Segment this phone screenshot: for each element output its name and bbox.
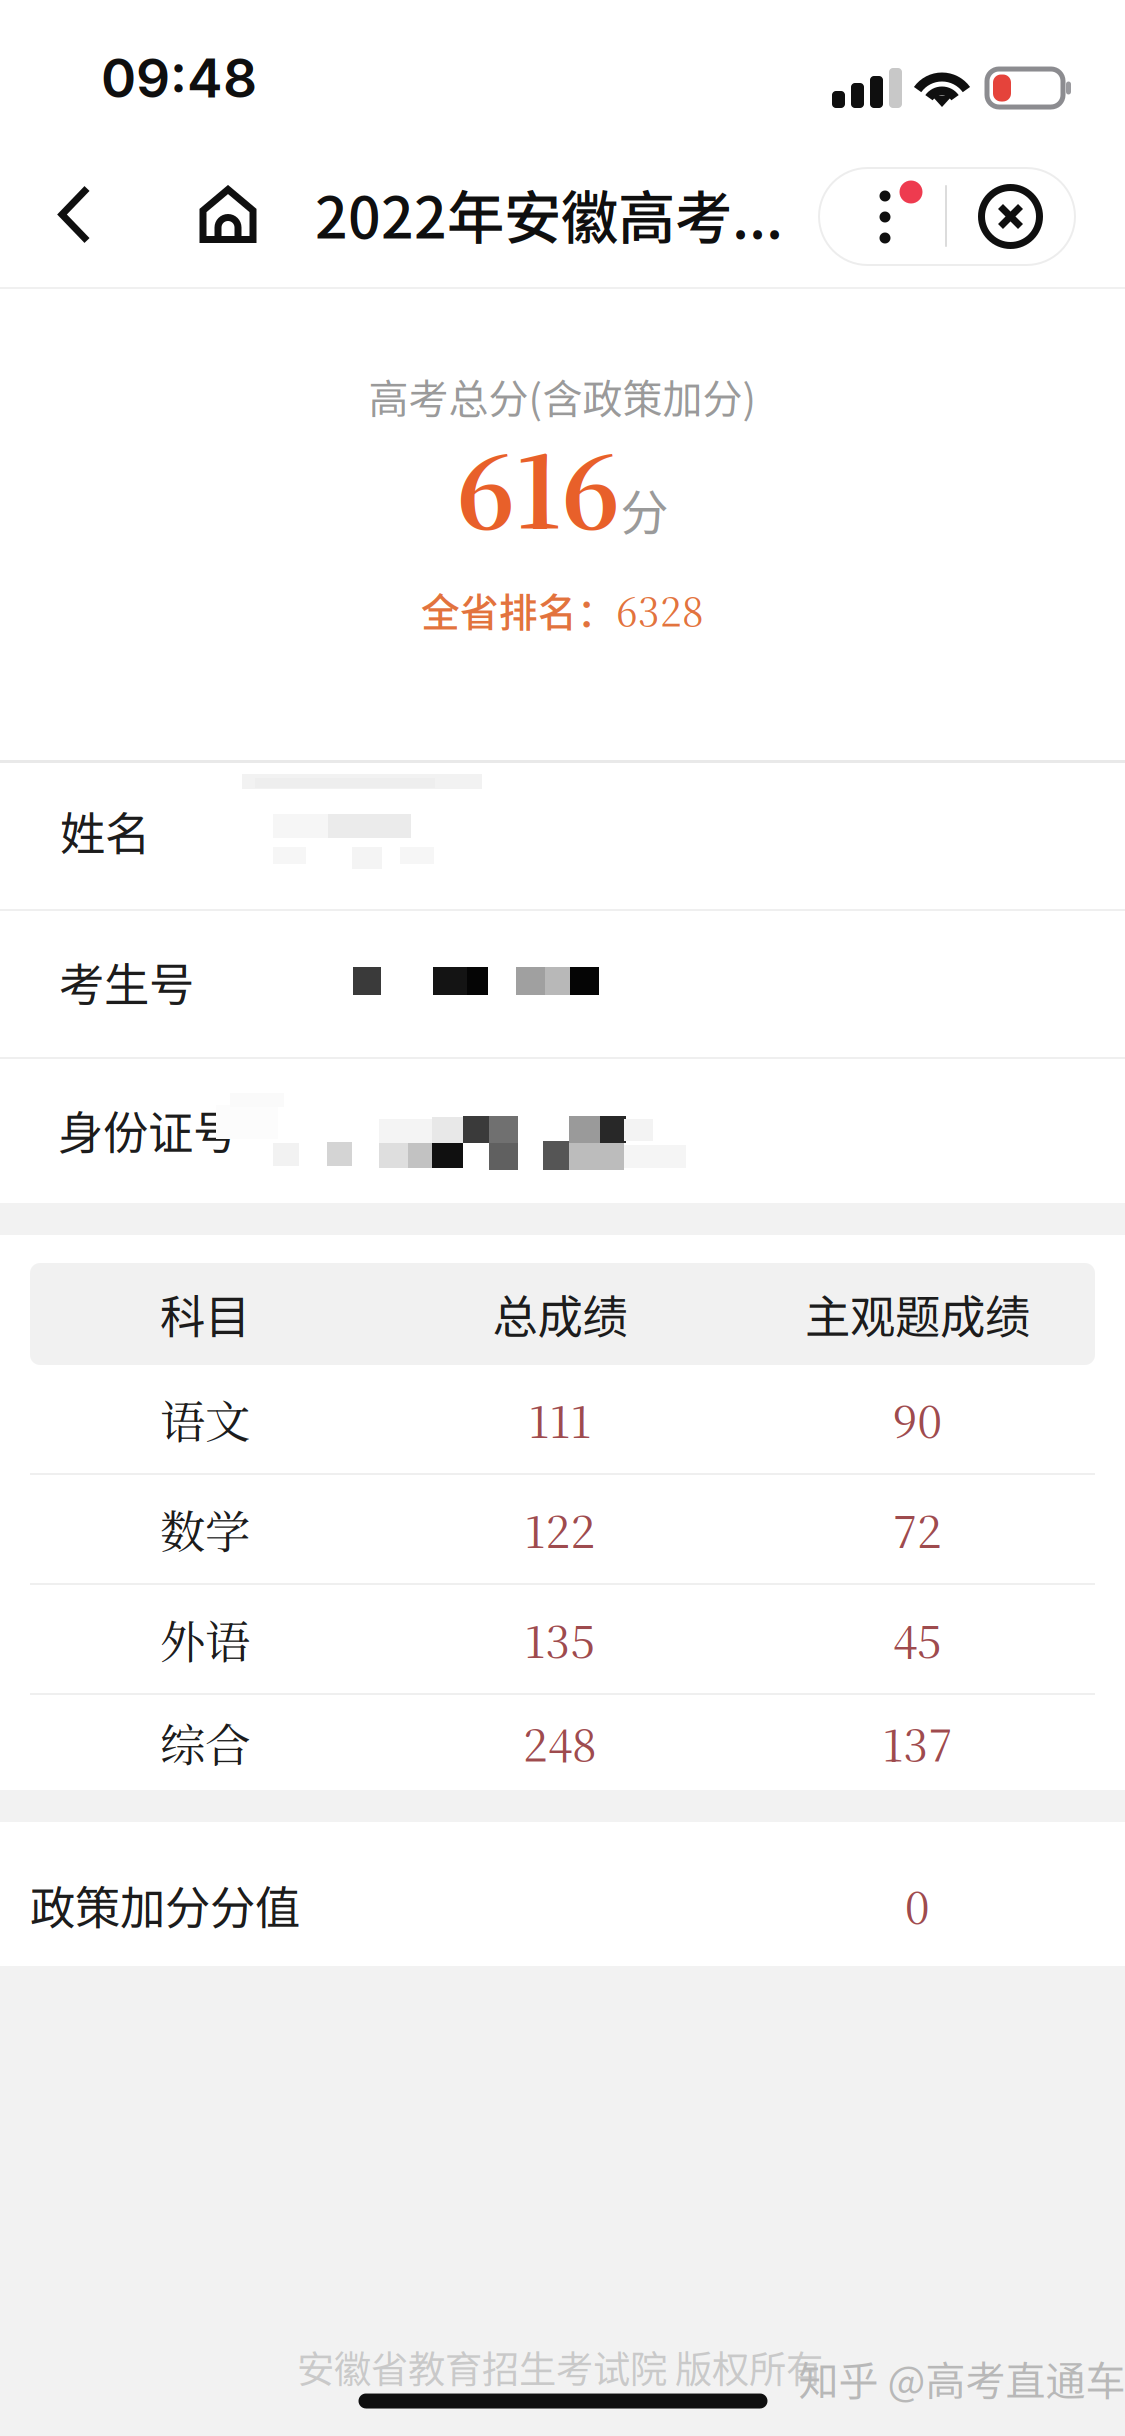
staticText: 外语 — [160, 1606, 250, 1671]
button[interactable]: More options — [819, 168, 946, 265]
staticText: 72 — [893, 1497, 942, 1561]
staticText: 总成绩 — [492, 1281, 627, 1347]
button[interactable]: Close — [946, 168, 1075, 265]
staticText: 137 — [882, 1711, 952, 1774]
staticText: 数学 — [160, 1496, 250, 1561]
staticText: 知乎 @高考直通车 — [798, 2349, 1125, 2407]
staticText: 248 — [523, 1711, 597, 1774]
staticText: 身份证号 — [58, 1097, 238, 1163]
staticText: 122 — [524, 1497, 595, 1561]
staticText: 616 — [456, 415, 620, 557]
staticText: 0 — [905, 1873, 930, 1937]
staticText: 高考总分(含政策加分) — [368, 367, 756, 425]
staticText: 考生号 — [59, 949, 194, 1015]
staticText: 主观题成绩 — [805, 1281, 1030, 1347]
staticText: 135 — [524, 1607, 595, 1671]
staticText: 安徽省教育招生考试院 版权所有 — [297, 2340, 823, 2394]
staticText: 分 — [620, 474, 668, 544]
staticText: 政策加分分值 — [30, 1872, 300, 1938]
staticText: 2022年安徽高考... — [315, 172, 783, 255]
staticText: 姓名 — [60, 798, 150, 864]
staticText: 全省排名： — [421, 582, 616, 638]
staticText: 语文 — [160, 1386, 250, 1451]
staticText: 45 — [893, 1607, 942, 1671]
button[interactable]: 姓名 — [0, 763, 1125, 909]
staticText: 09:48 — [101, 46, 257, 110]
staticText: 90 — [892, 1387, 942, 1451]
button[interactable]: Home — [199, 162, 257, 266]
button[interactable]: 考生号 — [0, 911, 1125, 1057]
staticText: 111 — [528, 1387, 591, 1451]
staticText: 综合 — [160, 1710, 250, 1775]
button[interactable]: Back — [36, 162, 114, 266]
button[interactable]: 身份证号 — [0, 1059, 1125, 1203]
staticText: 科目 — [160, 1281, 250, 1347]
staticText: 6328 — [616, 582, 704, 637]
